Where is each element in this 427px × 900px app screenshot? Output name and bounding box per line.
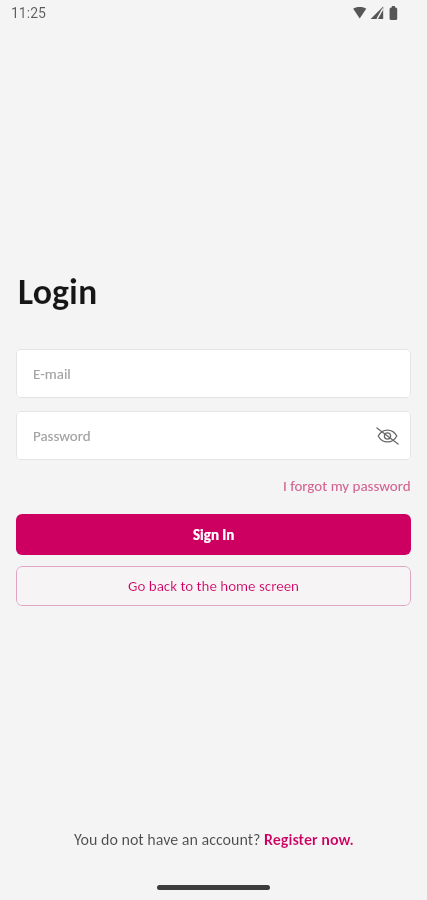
staticText: I forgot my password (283, 477, 411, 495)
button[interactable]: Go back to the home screen (16, 566, 411, 606)
staticText: You do not have an account? Register now… (74, 830, 354, 850)
button[interactable]: Show password (374, 423, 400, 449)
staticText: Password (33, 427, 91, 445)
staticText: Go back to the home screen (128, 577, 299, 595)
staticText: 11:25 (11, 5, 46, 21)
button[interactable]: You do not have an account? Register now… (74, 830, 354, 850)
button[interactable]: I forgot my password (283, 477, 411, 495)
staticText: E-mail (33, 365, 71, 383)
staticText: Login (18, 270, 98, 314)
button[interactable]: Sign In (16, 514, 411, 555)
button[interactable]: Password (16, 411, 411, 460)
staticText: Sign In (193, 526, 235, 544)
button[interactable]: E-mail (16, 349, 411, 398)
